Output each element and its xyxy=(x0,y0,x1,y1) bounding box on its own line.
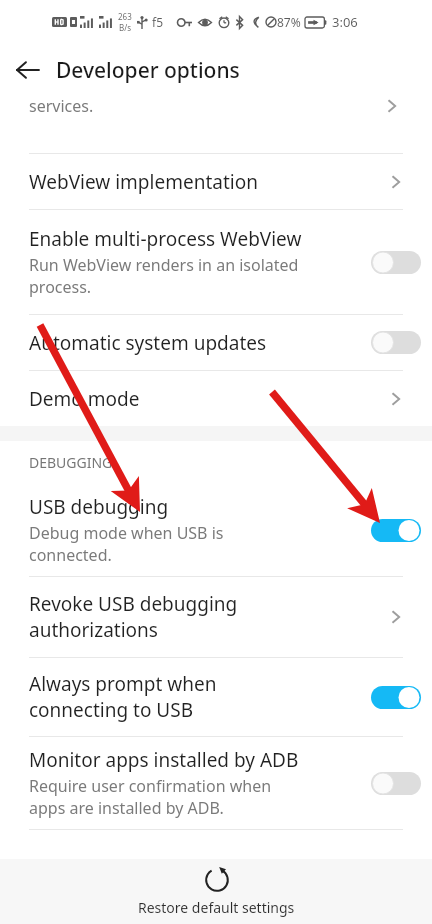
staticText: Monitor apps installed by ADB xyxy=(29,747,299,773)
button[interactable]: Enable multi-process WebView xyxy=(0,210,432,314)
button[interactable]: View and control currently running xyxy=(0,96,432,153)
button[interactable]: Demo mode xyxy=(0,371,432,426)
staticText: 263 xyxy=(118,11,132,22)
button[interactable]: Revoke USB debugging authorizations xyxy=(0,577,432,657)
staticText: Always prompt when connecting to USB xyxy=(29,671,217,723)
staticText: services. xyxy=(29,96,94,117)
button[interactable]: Always prompt when connecting to USB xyxy=(0,658,432,736)
staticText: Enable multi-process WebView xyxy=(29,226,302,252)
button[interactable]: Switch off xyxy=(371,772,421,795)
button[interactable]: Switch on xyxy=(371,686,421,709)
staticText: Demo mode xyxy=(29,386,140,412)
staticText: Run WebView renders in an isolated proce… xyxy=(29,254,299,298)
staticText: Developer options xyxy=(56,56,240,85)
staticText: Restore default settings xyxy=(138,898,295,917)
staticText: B/s xyxy=(119,22,132,33)
staticText: Revoke USB debugging authorizations xyxy=(29,591,238,643)
button[interactable]: Switch off xyxy=(371,331,421,354)
button[interactable]: USB debugging xyxy=(0,484,432,576)
staticText: Automatic system updates xyxy=(29,330,267,356)
staticText: f5 xyxy=(152,14,163,30)
staticText: WebView implementation xyxy=(29,169,258,195)
button[interactable]: Back xyxy=(0,44,56,96)
staticText: 3:06 xyxy=(332,13,358,31)
staticText: 87% xyxy=(277,14,301,30)
staticText: DEBUGGING xyxy=(29,453,113,472)
staticText: Debug mode when USB is connected. xyxy=(29,522,224,566)
staticText: Require user confirmation when apps are … xyxy=(29,775,272,819)
button[interactable]: WebView implementation xyxy=(0,154,432,209)
button[interactable]: Monitor apps installed by ADB xyxy=(0,737,432,829)
button[interactable]: Switch off xyxy=(371,251,421,274)
button[interactable]: Switch on xyxy=(371,519,421,542)
button[interactable]: Restore default settings xyxy=(0,859,432,924)
button[interactable]: Automatic system updates xyxy=(0,315,432,370)
staticText: USB debugging xyxy=(29,494,169,520)
